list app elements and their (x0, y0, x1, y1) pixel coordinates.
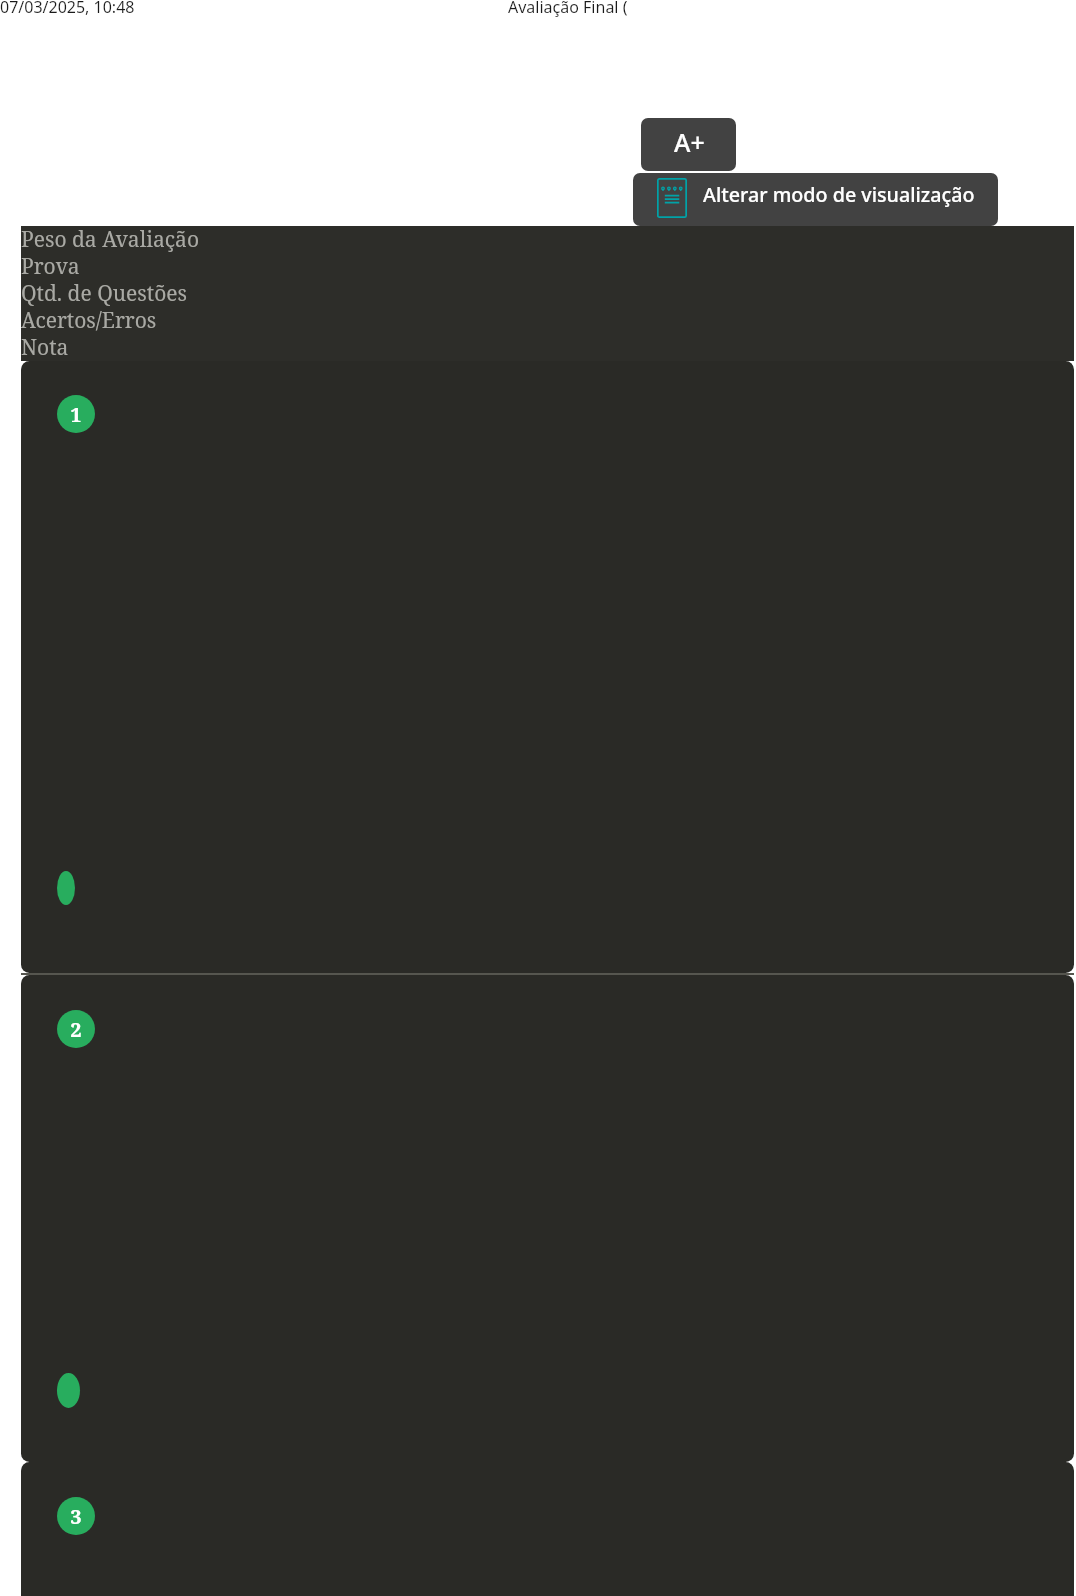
staticText: Qtd. de Questões (21, 279, 188, 306)
staticText: 2 (70, 1016, 82, 1043)
staticText: A+ (674, 125, 705, 159)
staticText: Acertos/Erros (21, 306, 157, 333)
staticText: 07/03/2025, 10:48 (0, 0, 135, 18)
button[interactable]: Alterar modo de visualização (633, 173, 998, 226)
button[interactable]: 1 (21, 361, 1074, 973)
staticText: Peso da Avaliação (21, 225, 199, 252)
staticText: Prova (21, 252, 80, 279)
staticText: 3 (70, 1503, 82, 1530)
staticText: Avaliação Final ( (508, 0, 628, 18)
staticText: Nota (21, 333, 69, 360)
staticText: Alterar modo de visualização (703, 181, 975, 208)
button[interactable]: 2 (21, 975, 1074, 1462)
button[interactable]: A+ (641, 118, 736, 171)
staticText: 1 (70, 401, 82, 428)
button[interactable]: 3 (21, 1462, 1074, 1596)
other: Alterar modo de visualização (657, 178, 687, 218)
